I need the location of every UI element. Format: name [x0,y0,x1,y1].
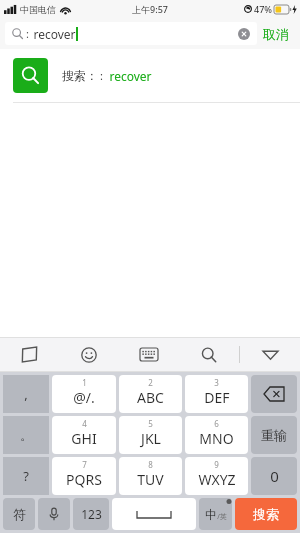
staticText: JKL [141,429,161,448]
staticText: recover [109,68,152,84]
staticText: WXYZ [198,470,236,489]
staticText: 中国电信 [20,4,56,15]
button[interactable]: Search [179,338,239,371]
button[interactable]: 搜索 [235,498,297,530]
staticText: 中 [205,507,217,522]
button[interactable]: 5 [119,416,182,454]
button[interactable]: 123 [73,498,109,530]
staticText: 8 [148,459,153,470]
staticText: 0 [270,466,279,486]
staticText: ABC [137,388,164,407]
staticText: TUV [137,470,164,489]
staticText: @/. [73,388,95,407]
button[interactable]: 7 [52,457,116,495]
staticText: 上午9:57 [132,3,168,15]
staticText: GHI [71,429,97,448]
staticText: 7 [82,459,87,470]
button[interactable]: 3 [185,375,248,413]
staticText: : [26,26,29,41]
button[interactable]: 2 [119,375,182,413]
button[interactable]: Sogou input [0,338,59,371]
staticText: 47% [254,3,272,15]
button[interactable]: 搜索： [0,49,300,102]
button[interactable]: : [5,22,257,45]
staticText: 6 [214,418,219,429]
button[interactable]: 1 [52,375,116,413]
button[interactable]: Clear [238,28,250,40]
button[interactable]: Backspace [251,375,297,413]
staticText: 搜索 [253,506,279,522]
button[interactable]: 9 [185,457,248,495]
button[interactable]: 符 [3,498,35,530]
button[interactable]: Voice input [38,498,70,530]
staticText: PQRS [66,470,102,489]
button[interactable]: 重输 [251,416,297,454]
button[interactable]: 6 [185,416,248,454]
button[interactable]: Space [112,498,196,530]
staticText: 1 [82,377,87,388]
button[interactable]: 8 [119,457,182,495]
button[interactable]: Keyboard layout [119,338,179,371]
staticText: 搜索： [62,68,98,83]
button[interactable]: , [3,375,49,413]
staticText: 123 [81,506,102,522]
button[interactable]: Hide keyboard [240,338,300,371]
staticText: 5 [148,418,153,429]
staticText: /英 [217,512,227,522]
staticText: 符 [13,506,26,522]
staticText: 。 [20,427,33,443]
button[interactable]: 4 [52,416,116,454]
staticText: , [24,385,28,403]
staticText: MNO [199,429,234,448]
staticText: : [100,68,103,83]
staticText: 重输 [261,427,287,443]
button[interactable]: ? [3,457,49,495]
button[interactable]: 中 [199,498,232,530]
staticText: 9 [214,459,219,470]
staticText: 4 [82,418,87,429]
button[interactable]: 0 [251,457,297,495]
staticText: 取消 [263,26,289,42]
staticText: ? [23,467,29,485]
button[interactable]: 。 [3,416,49,454]
button[interactable]: Emoji [59,338,119,371]
staticText: 3 [214,377,219,388]
staticText: recover [33,26,76,42]
button[interactable]: 取消 [257,22,295,45]
staticText: 2 [148,377,153,388]
staticText: DEF [204,388,230,407]
